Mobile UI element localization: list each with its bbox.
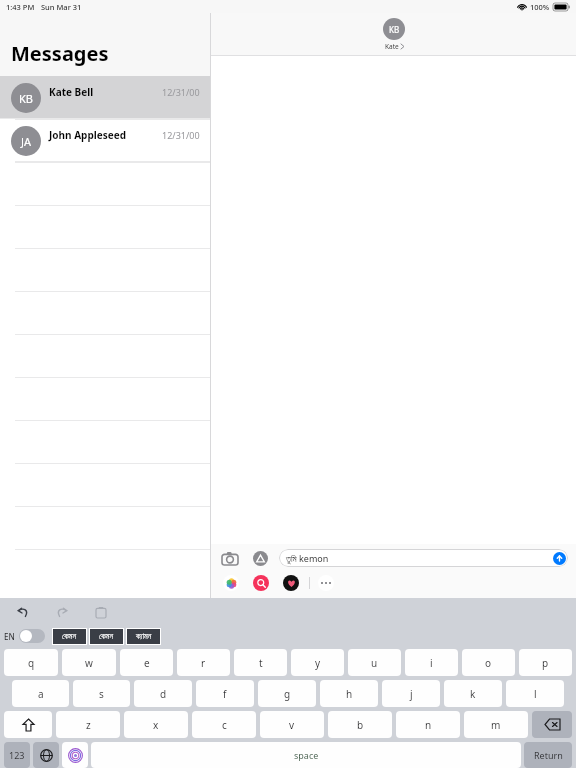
button[interactable]: p	[519, 649, 572, 676]
staticText: r	[201, 656, 206, 670]
button[interactable]: Language toggle	[19, 629, 45, 643]
staticText: Return	[534, 749, 563, 761]
button[interactable]: Apps	[249, 547, 271, 569]
button[interactable]: m	[464, 711, 528, 738]
staticText: a	[38, 687, 44, 701]
button[interactable]: l	[506, 680, 564, 707]
staticText: s	[99, 687, 104, 701]
staticText: 123	[9, 749, 25, 761]
button[interactable]: i	[405, 649, 458, 676]
button[interactable]: o	[462, 649, 515, 676]
staticText: KB	[389, 24, 400, 35]
staticText: তুমি kemon	[286, 552, 329, 564]
staticText: KB	[19, 91, 33, 106]
staticText: n	[425, 718, 432, 732]
staticText: 1:43 PM	[6, 2, 35, 12]
staticText: ক্যামন	[136, 633, 152, 641]
button[interactable]: তুমি kemon	[279, 549, 568, 567]
button[interactable]: j	[382, 680, 440, 707]
staticText: g	[284, 687, 291, 701]
staticText: h	[346, 687, 353, 701]
button[interactable]: More	[318, 575, 334, 591]
button[interactable]: KB	[0, 76, 210, 119]
staticText: 12/31/00	[162, 86, 200, 98]
button[interactable]: KB	[211, 13, 576, 55]
staticText: 12/31/00	[162, 129, 200, 141]
button[interactable]: Backspace	[532, 711, 572, 738]
button[interactable]: Redo	[53, 603, 71, 621]
button[interactable]: d	[134, 680, 192, 707]
staticText: Kate Bell	[49, 85, 162, 99]
button[interactable]: x	[124, 711, 188, 738]
button[interactable]: y	[291, 649, 344, 676]
button[interactable]: Photos	[223, 575, 239, 591]
staticText: কেমন	[99, 633, 114, 641]
button[interactable]: q	[4, 649, 58, 676]
staticText: m	[491, 718, 501, 732]
staticText: John Appleseed	[49, 128, 162, 142]
staticText: Kate	[385, 42, 399, 51]
button[interactable]: s	[73, 680, 130, 707]
button[interactable]: ক্যামন	[126, 628, 161, 645]
button[interactable]: Send	[553, 552, 566, 565]
staticText: c	[222, 718, 227, 732]
button[interactable]: h	[320, 680, 378, 707]
button[interactable]: Camera	[219, 547, 241, 569]
button[interactable]: z	[56, 711, 120, 738]
button[interactable]: t	[234, 649, 287, 676]
staticText: i	[430, 656, 433, 670]
staticText: j	[410, 687, 413, 701]
staticText: y	[315, 656, 321, 670]
button[interactable]: Dictation	[62, 742, 88, 768]
staticText: কেমন	[62, 633, 77, 641]
staticText: JA	[21, 134, 32, 149]
button[interactable]: Paste	[92, 603, 110, 621]
button[interactable]: a	[12, 680, 69, 707]
button[interactable]: Shift	[4, 711, 52, 738]
button[interactable]: Switch keyboard	[33, 742, 59, 768]
staticText: l	[534, 687, 537, 701]
button[interactable]: w	[62, 649, 116, 676]
button[interactable]: c	[192, 711, 256, 738]
button[interactable]: JA	[0, 119, 210, 162]
button[interactable]: u	[348, 649, 401, 676]
button[interactable]: f	[196, 680, 254, 707]
button[interactable]: Return	[524, 742, 572, 768]
button[interactable]: 123	[4, 742, 30, 768]
button[interactable]: g	[258, 680, 316, 707]
staticText: k	[470, 687, 476, 701]
button[interactable]: কেমন	[89, 628, 124, 645]
button[interactable]: v	[260, 711, 324, 738]
staticText: Sun Mar 31	[41, 2, 82, 12]
staticText: Messages	[11, 40, 109, 67]
staticText: d	[160, 687, 167, 701]
staticText: w	[85, 656, 93, 670]
staticText: p	[542, 656, 549, 670]
staticText: v	[289, 718, 295, 732]
staticText: space	[294, 749, 319, 761]
button[interactable]: Images	[253, 575, 269, 591]
button[interactable]: k	[444, 680, 502, 707]
staticText: b	[357, 718, 364, 732]
staticText: z	[86, 718, 91, 732]
staticText: 100%	[530, 2, 550, 12]
staticText: x	[153, 718, 159, 732]
staticText: u	[371, 656, 378, 670]
button[interactable]: space	[91, 742, 521, 768]
staticText: t	[259, 656, 263, 670]
button[interactable]: Undo	[14, 603, 32, 621]
button[interactable]: e	[120, 649, 173, 676]
staticText: o	[485, 656, 492, 670]
button[interactable]: r	[177, 649, 230, 676]
staticText: f	[223, 687, 227, 701]
button[interactable]: n	[396, 711, 460, 738]
button[interactable]: b	[328, 711, 392, 738]
staticText: EN	[4, 631, 15, 642]
button[interactable]: কেমন	[52, 628, 87, 645]
staticText: q	[28, 656, 35, 670]
staticText: e	[144, 656, 150, 670]
button[interactable]: Digital Touch	[283, 575, 299, 591]
